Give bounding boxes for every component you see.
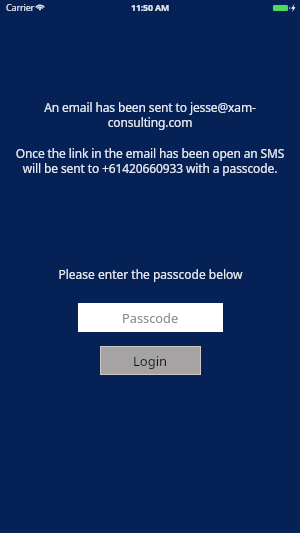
staticText: Once the link in the email has been open… bbox=[12, 145, 288, 176]
staticText: Passcode bbox=[122, 309, 179, 326]
staticText: Carrier bbox=[6, 1, 35, 14]
staticText: Login bbox=[133, 352, 168, 370]
staticText: An email has been sent to jesse@xam-cons… bbox=[35, 99, 265, 130]
other: Wi-Fi signal bbox=[35, 3, 45, 10]
button[interactable]: Login bbox=[101, 347, 200, 374]
staticText: 11:50 AM bbox=[131, 2, 170, 14]
other: Battery charging bbox=[273, 4, 296, 12]
staticText: Please enter the passcode below bbox=[58, 266, 243, 282]
button[interactable]: Passcode bbox=[78, 303, 223, 332]
